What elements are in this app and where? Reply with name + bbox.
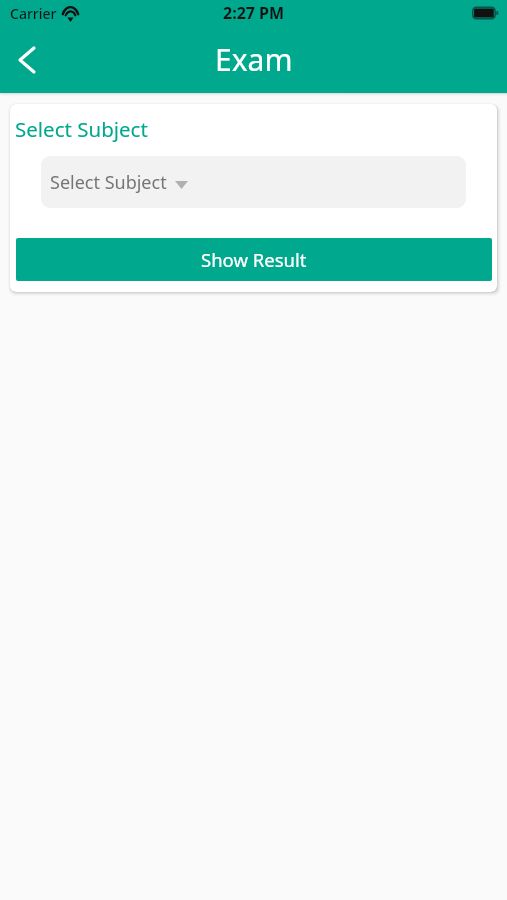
button[interactable]: Show Result xyxy=(16,238,492,281)
button[interactable]: Back xyxy=(3,36,51,84)
button[interactable]: Select Subject xyxy=(41,156,466,208)
staticText: 2:27 PM xyxy=(223,2,285,24)
staticText: Select Subject xyxy=(15,115,148,143)
staticText: Exam xyxy=(215,39,293,80)
staticText: Select Subject xyxy=(50,170,167,195)
staticText: Carrier xyxy=(10,4,57,23)
staticText: Show Result xyxy=(201,247,307,272)
